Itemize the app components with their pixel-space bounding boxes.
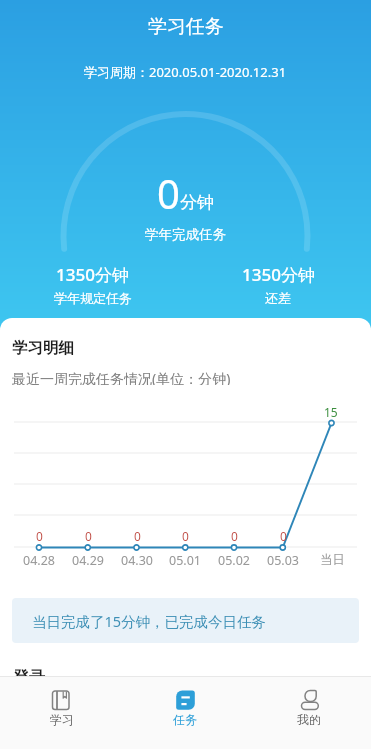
staticText: 1350分钟 xyxy=(242,263,315,286)
staticText: 最近一周完成任务情况(单位：分钟) xyxy=(12,369,231,385)
staticText: 0 xyxy=(157,166,180,216)
staticText: 学习 xyxy=(50,712,74,727)
staticText: 我的 xyxy=(297,712,321,727)
staticText: 当日 xyxy=(320,552,345,568)
staticText: 0 xyxy=(134,528,141,544)
button[interactable]: 当日完成了15分钟，已完成今日任务 xyxy=(12,598,359,643)
staticText: 当日完成了15分钟，已完成今日任务 xyxy=(32,611,267,631)
button[interactable]: 任务 xyxy=(123,677,247,749)
staticText: 04.28 xyxy=(23,552,55,568)
staticText: 0 xyxy=(280,528,287,544)
staticText: 分钟 xyxy=(180,192,214,213)
staticText: 05.03 xyxy=(267,552,299,568)
staticText: 学习明细 xyxy=(12,338,74,356)
staticText: 15 xyxy=(324,404,338,420)
staticText: 登录 xyxy=(13,668,45,688)
staticText: 0 xyxy=(231,528,238,544)
button[interactable]: 学习 xyxy=(0,677,123,749)
staticText: 0 xyxy=(85,528,92,544)
staticText: 还差 xyxy=(265,290,291,306)
staticText: 1350分钟 xyxy=(56,263,129,286)
staticText: 04.29 xyxy=(72,552,104,568)
staticText: 学习任务 xyxy=(148,15,224,39)
staticText: 05.01 xyxy=(169,552,201,568)
staticText: 04.30 xyxy=(121,552,153,568)
staticText: 学年规定任务 xyxy=(54,290,132,306)
staticText: 任务 xyxy=(173,712,197,727)
staticText: 0 xyxy=(36,528,43,544)
staticText: 学习周期：2020.05.01-2020.12.31 xyxy=(84,63,287,81)
staticText: 05.02 xyxy=(218,552,250,568)
staticText: 0 xyxy=(182,528,189,544)
staticText: 学年完成任务 xyxy=(145,226,226,243)
button[interactable]: 我的 xyxy=(247,677,371,749)
